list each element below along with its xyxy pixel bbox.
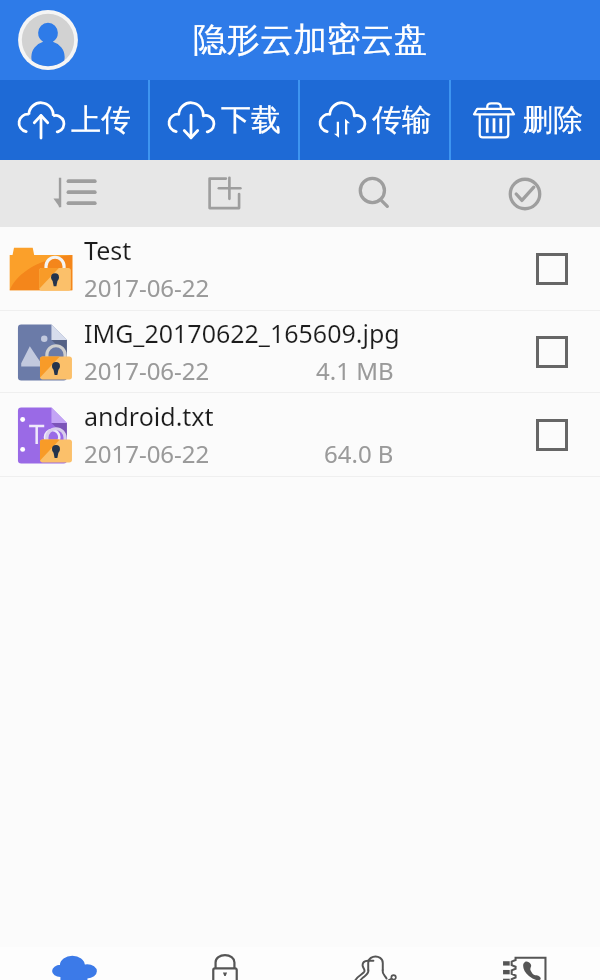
button[interactable]: android.txt (0, 393, 600, 476)
button[interactable]: Select IMG_20170622_165609.jpg (510, 311, 593, 392)
button[interactable]: 上传 (0, 80, 148, 160)
staticText: 64.0 B (324, 437, 394, 470)
button[interactable]: Search (300, 160, 450, 227)
staticText: 删除 (523, 101, 583, 139)
button[interactable]: New folder (150, 160, 300, 227)
button[interactable]: 删除 (451, 80, 600, 160)
staticText: IMG_20170622_165609.jpg (84, 316, 400, 350)
staticText: 下载 (221, 101, 281, 139)
button[interactable]: Call log (450, 947, 600, 980)
button[interactable]: 下载 (150, 80, 298, 160)
button[interactable]: Select all (450, 160, 600, 227)
button[interactable]: Select android.txt (510, 393, 593, 476)
staticText: 隐形云加密云盘 (193, 19, 428, 61)
button[interactable]: 传输 (300, 80, 449, 160)
button[interactable]: Cloud drive (0, 947, 150, 980)
staticText: Test (84, 233, 132, 267)
button[interactable]: Sort (0, 160, 150, 227)
staticText: 上传 (71, 101, 131, 139)
staticText: android.txt (84, 399, 214, 433)
button[interactable]: Contacts (300, 947, 450, 980)
button[interactable]: Vault (150, 947, 300, 980)
staticText: 2017-06-22 (84, 354, 210, 387)
staticText: 4.1 MB (316, 354, 394, 387)
staticText: 2017-06-22 (84, 271, 210, 304)
button[interactable]: Profile (14, 6, 82, 74)
button[interactable]: Select Test (510, 227, 593, 310)
staticText: 2017-06-22 (84, 437, 210, 470)
staticText: 传输 (372, 101, 432, 139)
button[interactable]: IMG_20170622_165609.jpg (0, 311, 600, 392)
button[interactable]: Test (0, 227, 600, 310)
